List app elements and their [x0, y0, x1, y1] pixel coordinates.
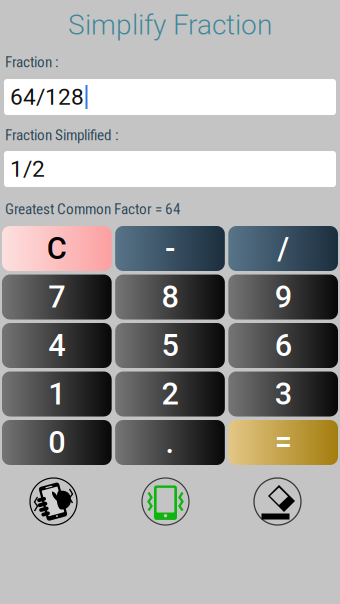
button[interactable]: 0 [2, 420, 112, 465]
button[interactable]: / [228, 226, 338, 271]
button[interactable]: . [115, 420, 225, 465]
button[interactable]: Vibration feedback [142, 478, 189, 525]
staticText: 4 [48, 327, 65, 363]
staticText: . [165, 424, 174, 460]
staticText: 7 [48, 279, 65, 315]
staticText: 0 [48, 424, 65, 460]
staticText: 6 [275, 327, 292, 363]
button[interactable]: 3 [228, 371, 338, 416]
staticText: 8 [161, 279, 178, 315]
button[interactable]: 7 [2, 274, 112, 319]
button[interactable]: 9 [228, 274, 338, 319]
button[interactable]: 1 [2, 371, 112, 416]
staticText: / [277, 230, 289, 266]
staticText: Greatest Common Factor = 64 [5, 200, 181, 218]
staticText: 1 [48, 376, 65, 412]
button[interactable]: Shake to generate [30, 478, 77, 525]
staticText: - [165, 230, 175, 266]
staticText: 2 [161, 376, 178, 412]
staticText: Simplify Fraction [68, 9, 272, 41]
staticText: 5 [161, 327, 178, 363]
button[interactable]: 4 [2, 323, 112, 368]
button[interactable]: 6 [228, 323, 338, 368]
button[interactable]: Erase [254, 478, 301, 525]
button[interactable]: 2 [115, 371, 225, 416]
staticText: Fraction : [5, 53, 59, 71]
staticText: 3 [275, 376, 292, 412]
button[interactable]: 8 [115, 274, 225, 319]
button[interactable]: 5 [115, 323, 225, 368]
button[interactable]: - [115, 226, 225, 271]
staticText: C [47, 230, 67, 266]
staticText: 1/2 [10, 156, 45, 182]
staticText: 64/128 [10, 84, 84, 110]
staticText: = [275, 424, 292, 460]
staticText: Fraction Simplified : [5, 126, 119, 144]
button[interactable]: = [228, 420, 338, 465]
button[interactable]: C [2, 226, 112, 271]
staticText: 9 [275, 279, 292, 315]
